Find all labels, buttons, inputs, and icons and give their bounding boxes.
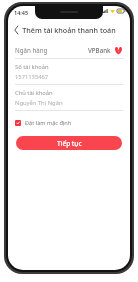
staticText: Tiếp tục (57, 139, 82, 148)
button[interactable]: 1571135467 (15, 73, 49, 81)
button[interactable]: Ngân hàng (15, 42, 123, 58)
button[interactable]: Tiếp tục (16, 136, 122, 150)
staticText: Ngân hàng (15, 46, 48, 54)
staticText: 14:45 (14, 9, 29, 16)
staticText: Thêm tài khoản thanh toán (22, 25, 116, 35)
button[interactable]: Đặt làm mặc định (15, 119, 72, 127)
staticText: Số tài khoản (15, 63, 49, 71)
button[interactable]: Back (8, 22, 24, 38)
staticText: Đặt làm mặc định (25, 119, 72, 127)
staticText: Chủ tài khoản (15, 89, 53, 97)
button[interactable]: Nguyễn Thị Ngân (15, 99, 63, 107)
staticText: VPBank (88, 46, 111, 54)
